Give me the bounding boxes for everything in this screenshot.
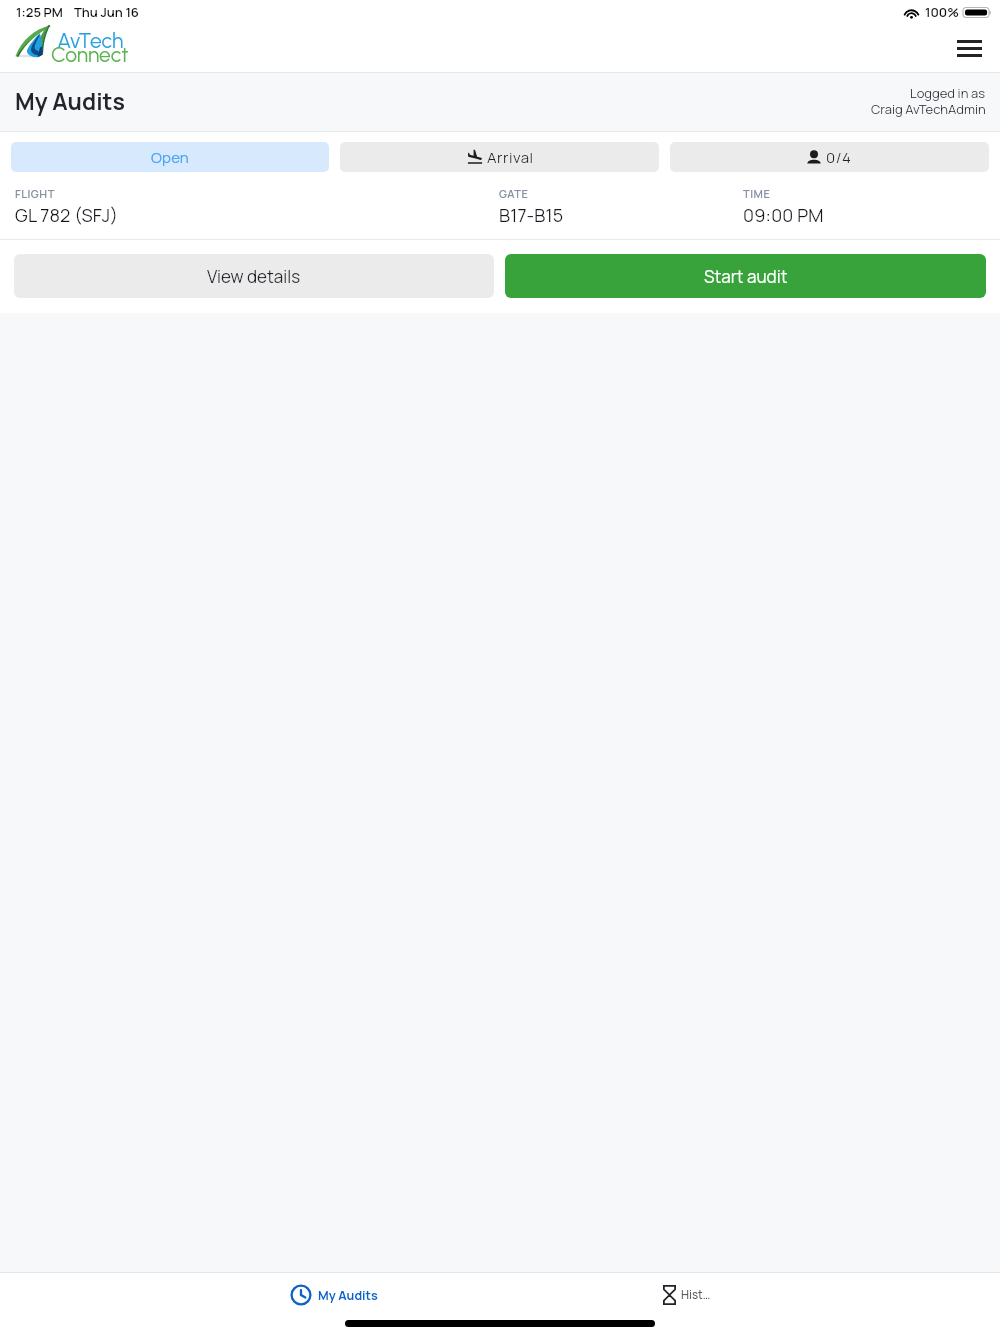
staticText: Craig AvTechAdmin (871, 100, 986, 118)
staticText: Thu Jun 16 (74, 3, 139, 21)
staticText: AvTech (57, 28, 124, 53)
button[interactable]: View details (14, 254, 494, 298)
staticText: 09:00 PM (743, 203, 824, 228)
button[interactable]: Crew 0 of 4 (670, 142, 989, 172)
button[interactable]: Open status filter (11, 142, 329, 172)
staticText: Hist… (681, 1287, 711, 1303)
staticText: Start audit (704, 265, 788, 288)
staticText: 0/4 (826, 147, 852, 167)
staticText: GATE (499, 186, 529, 201)
staticText: 1:25 PM (16, 3, 63, 21)
button[interactable]: Start audit (505, 254, 986, 298)
staticText: View details (207, 265, 301, 288)
staticText: Arrival (487, 147, 534, 167)
staticText: Connect (51, 42, 129, 67)
staticText: 100% (925, 3, 959, 21)
staticText: My Audits (15, 85, 125, 116)
button[interactable]: Arrival (340, 142, 659, 172)
button[interactable]: Hist… (651, 1278, 723, 1312)
button[interactable]: Open menu (946, 25, 992, 71)
staticText: My Audits (318, 1287, 378, 1304)
button[interactable]: My Audits (278, 1278, 390, 1312)
staticText: GL 782 (SFJ) (15, 203, 119, 228)
staticText: TIME (743, 186, 771, 201)
staticText: FLIGHT (15, 186, 55, 201)
staticText: B17-B15 (499, 203, 564, 228)
staticText: Open (151, 147, 189, 167)
staticText: Logged in as (910, 84, 986, 102)
